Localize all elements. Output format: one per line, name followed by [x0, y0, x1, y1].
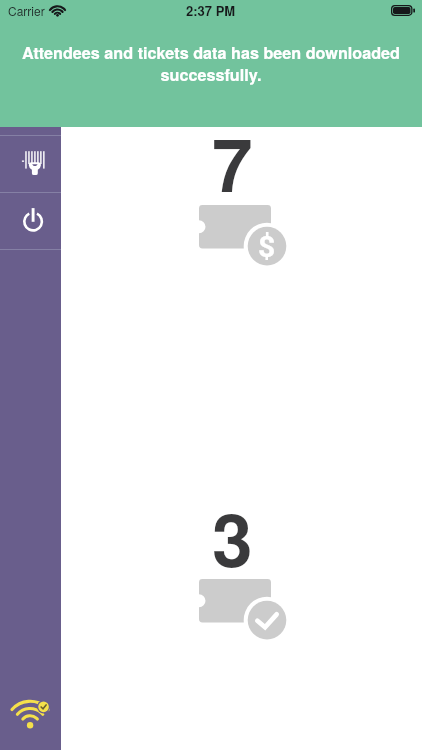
staticText: $: [258, 229, 276, 264]
button[interactable]: Wifi connected: [0, 690, 61, 750]
staticText: 3: [212, 485, 253, 590]
staticText: 2:37 PM: [186, 1, 236, 20]
staticText: Attendees and tickets data has been down…: [16, 41, 406, 86]
button[interactable]: Scan barcode: [0, 136, 61, 192]
button[interactable]: Power: [0, 193, 61, 249]
staticText: Carrier: [8, 2, 45, 19]
staticText: 7: [212, 110, 253, 215]
